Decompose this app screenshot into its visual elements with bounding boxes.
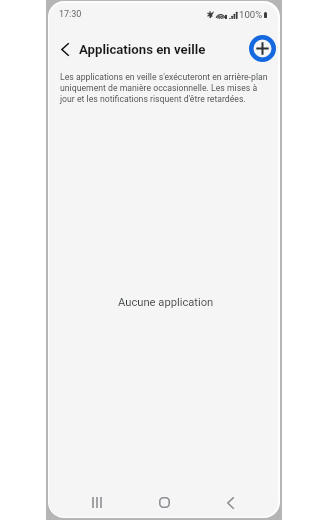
staticText: 17:30 <box>59 9 82 20</box>
button[interactable]: Retour <box>213 488 247 517</box>
button[interactable]: Ajouter <box>247 33 277 63</box>
button[interactable]: Retour <box>55 39 75 59</box>
button[interactable]: Accueil <box>147 488 181 517</box>
staticText: Aucune application <box>118 296 214 309</box>
staticText: 100% <box>239 9 263 20</box>
button[interactable]: Applications récentes <box>80 488 114 517</box>
staticText: Les applications en veille s'exécuteront… <box>60 72 269 104</box>
staticText: Applications en veille <box>79 42 206 57</box>
